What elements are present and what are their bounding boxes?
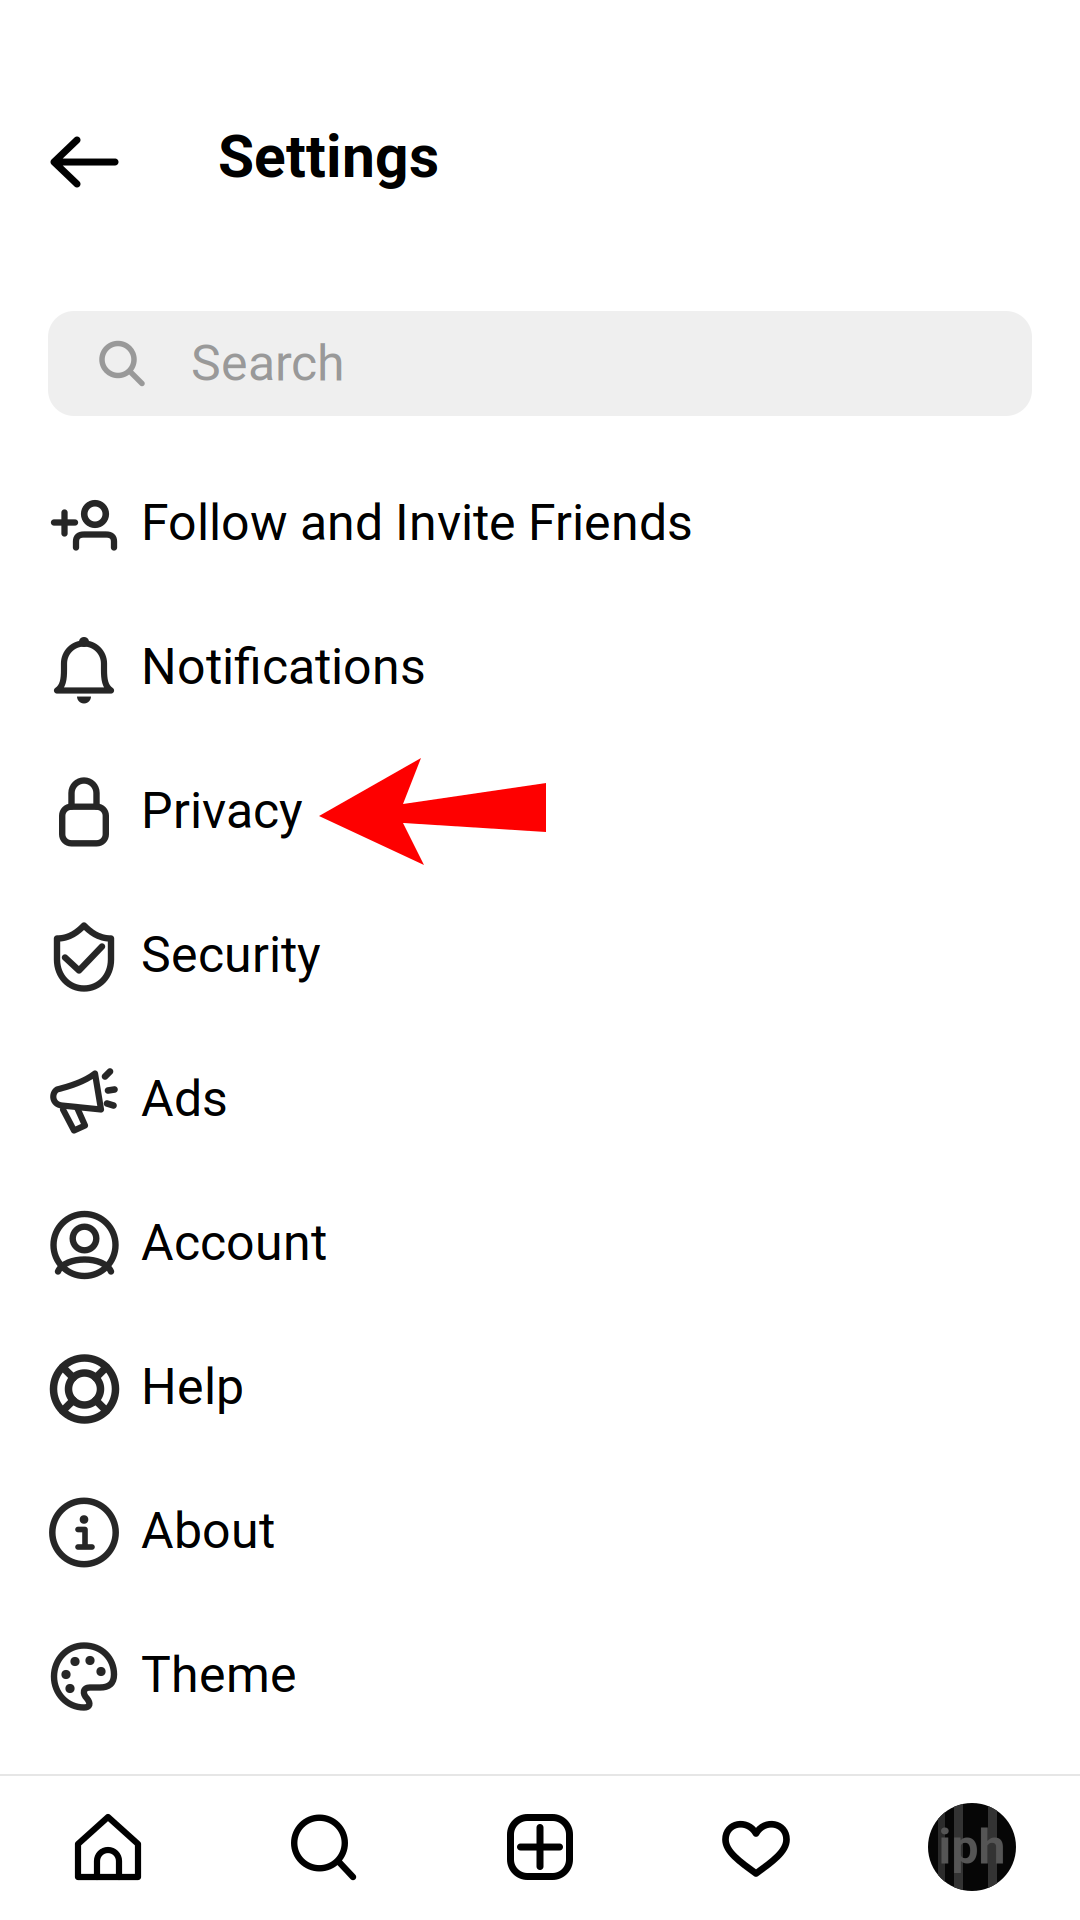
staticText: Ads — [141, 1070, 228, 1128]
button[interactable]: Create — [432, 1774, 648, 1920]
staticText: Search — [191, 334, 345, 393]
button[interactable]: Ads — [0, 1027, 1080, 1171]
button[interactable]: About — [0, 1459, 1080, 1603]
button[interactable]: Profile — [864, 1774, 1080, 1920]
button[interactable]: Search — [216, 1774, 432, 1920]
staticText: Security — [141, 926, 321, 984]
staticText: Settings — [218, 123, 439, 191]
button[interactable]: Account — [0, 1171, 1080, 1315]
staticText: Theme — [141, 1646, 297, 1704]
button[interactable]: Activity — [648, 1774, 864, 1920]
button[interactable]: Home — [0, 1774, 216, 1920]
staticText: Account — [141, 1214, 327, 1272]
button[interactable]: Privacy — [0, 739, 1080, 883]
button[interactable]: Theme — [0, 1603, 1080, 1747]
button[interactable]: Back — [0, 112, 218, 202]
staticText: Privacy — [141, 782, 303, 840]
button[interactable]: Notifications — [0, 595, 1080, 739]
staticText: About — [141, 1502, 275, 1560]
staticText: iph — [938, 1819, 1005, 1875]
button[interactable]: Follow and Invite Friends — [0, 451, 1080, 595]
staticText: Notifications — [141, 638, 426, 696]
button[interactable]: Help — [0, 1315, 1080, 1459]
staticText: Follow and Invite Friends — [141, 494, 693, 552]
button[interactable]: Security — [0, 883, 1080, 1027]
staticText: Help — [141, 1358, 244, 1416]
